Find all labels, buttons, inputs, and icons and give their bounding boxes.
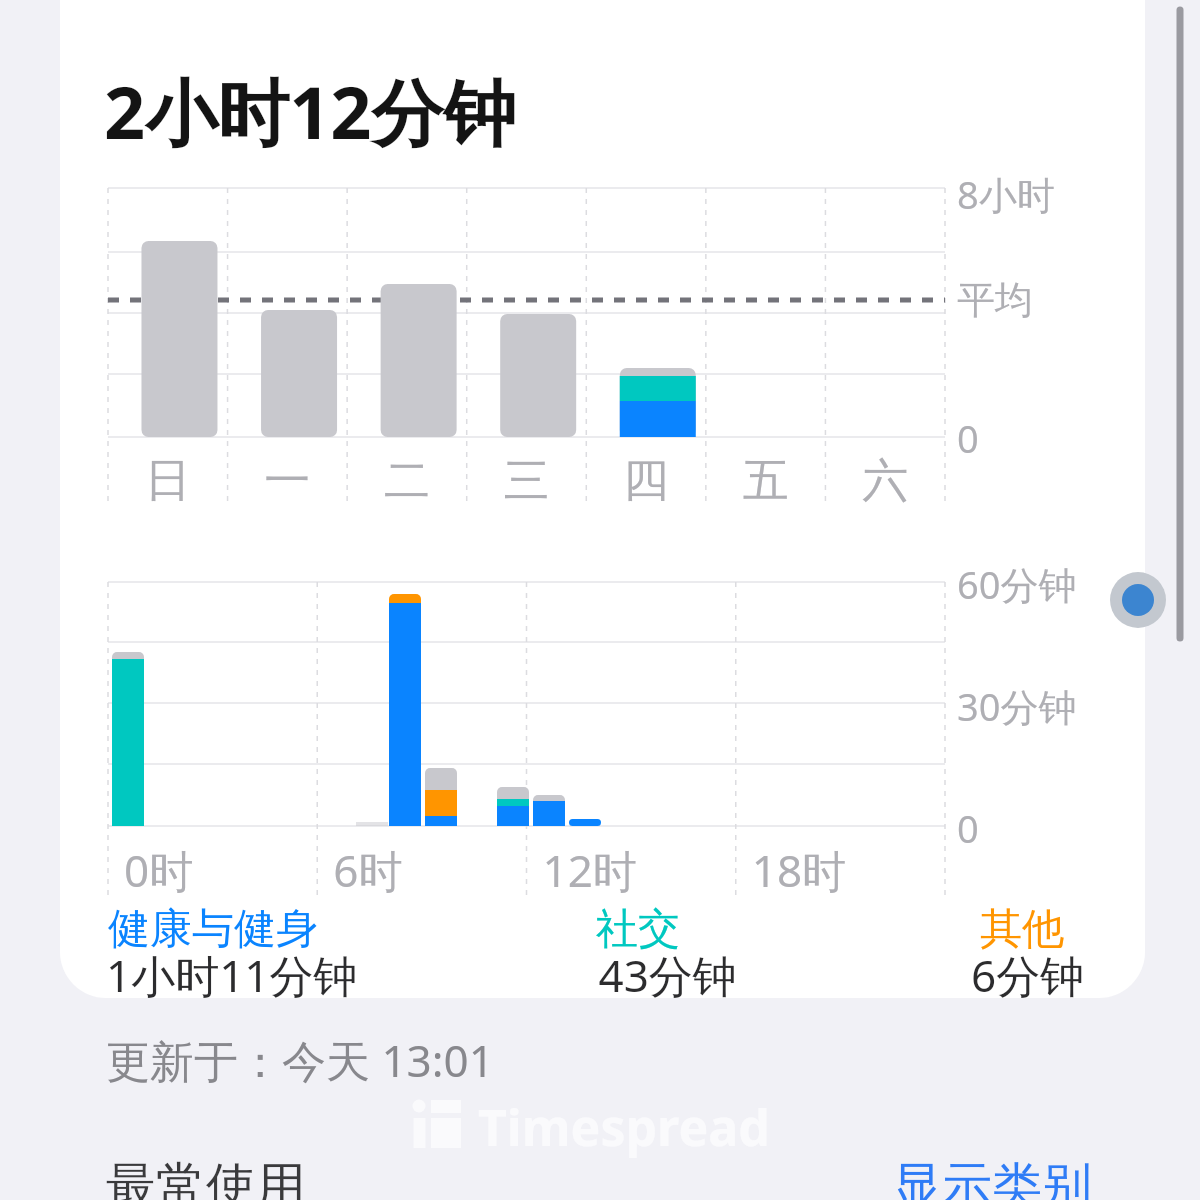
button[interactable]: Screen time chart card — [0, 0, 1200, 1200]
